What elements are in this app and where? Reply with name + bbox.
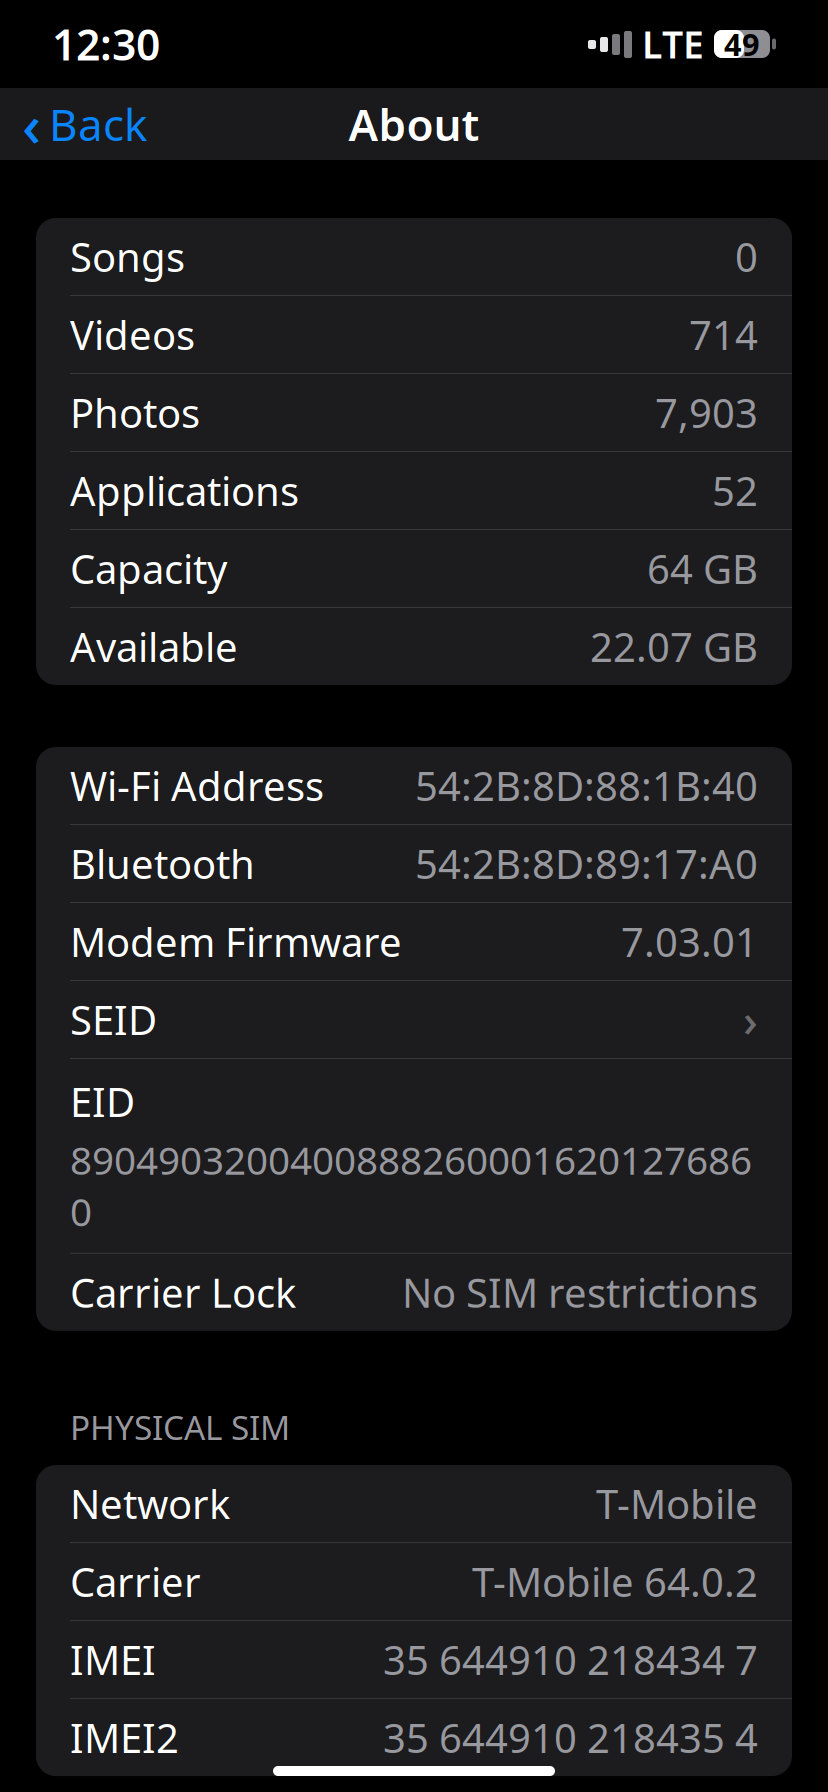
staticText: Network — [70, 1477, 230, 1530]
button[interactable]: Applications — [36, 452, 792, 529]
button[interactable]: SEID — [36, 981, 792, 1058]
staticText: Bluetooth — [70, 837, 255, 890]
staticText: LTE — [642, 19, 704, 69]
staticText: T-Mobile 64.0.2 — [472, 1555, 758, 1608]
button[interactable]: Network — [36, 1465, 792, 1542]
button[interactable]: IMEI — [36, 1621, 792, 1698]
staticText: IMEI — [70, 1633, 156, 1686]
button[interactable]: ‹ — [0, 92, 169, 156]
staticText: › — [743, 989, 758, 1050]
staticText: 49 — [724, 24, 760, 64]
staticText: 714 — [689, 308, 758, 361]
staticText: Capacity — [70, 542, 227, 595]
button[interactable]: Modem Firmware — [36, 903, 792, 980]
button[interactable]: Photos — [36, 374, 792, 451]
staticText: PHYSICAL SIM — [70, 1405, 290, 1449]
staticText: No SIM restrictions — [402, 1266, 758, 1319]
button[interactable]: Available — [36, 608, 792, 685]
staticText: 52 — [712, 464, 758, 517]
staticText: T-Mobile — [596, 1477, 758, 1530]
staticText: Back — [49, 95, 147, 153]
staticText: SEID — [70, 993, 157, 1046]
button[interactable]: Bluetooth — [36, 825, 792, 902]
button[interactable]: Carrier Lock — [36, 1254, 792, 1331]
staticText: 89049032004008882600016201276860 — [70, 1134, 752, 1237]
button[interactable]: Wi-Fi Address — [36, 747, 792, 824]
button[interactable]: Videos — [36, 296, 792, 373]
staticText: Carrier — [70, 1555, 201, 1608]
staticText: Carrier Lock — [70, 1266, 296, 1319]
button[interactable]: IMEI2 — [36, 1699, 792, 1776]
staticText: EID — [70, 1075, 135, 1128]
button[interactable]: EID — [36, 1059, 792, 1253]
staticText: 54:2B:8D:89:17:A0 — [415, 837, 758, 890]
staticText: 54:2B:8D:88:1B:40 — [415, 759, 758, 812]
staticText: 35 644910 218435 4 — [383, 1711, 758, 1764]
staticText: 7,903 — [655, 386, 758, 439]
staticText: IMEI2 — [70, 1711, 179, 1764]
staticText: Photos — [70, 386, 200, 439]
staticText: 35 644910 218434 7 — [383, 1633, 758, 1686]
button[interactable]: Capacity — [36, 530, 792, 607]
staticText: 12:30 — [52, 16, 160, 72]
staticText: Applications — [70, 464, 299, 517]
staticText: 22.07 GB — [590, 620, 758, 673]
staticText: Wi-Fi Address — [70, 759, 324, 812]
staticText: Songs — [70, 230, 185, 283]
staticText: ‹ — [22, 85, 41, 163]
staticText: Modem Firmware — [70, 915, 402, 968]
button[interactable]: Songs — [36, 218, 792, 295]
staticText: Available — [70, 620, 238, 673]
staticText: 64 GB — [647, 542, 758, 595]
staticText: Videos — [70, 308, 195, 361]
staticText: 7.03.01 — [621, 915, 758, 968]
staticText: 0 — [735, 230, 758, 283]
staticText: About — [348, 95, 479, 153]
button[interactable]: Carrier — [36, 1543, 792, 1620]
